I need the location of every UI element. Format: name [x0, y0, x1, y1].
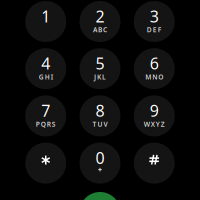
button[interactable]: 9: [134, 95, 175, 136]
staticText: W X Y Z: [144, 120, 165, 129]
staticText: 7: [41, 100, 50, 121]
staticText: T U V: [92, 120, 107, 129]
staticText: M N O: [145, 72, 163, 81]
button[interactable]: #: [134, 143, 175, 184]
staticText: 4: [41, 53, 50, 74]
staticText: D E F: [147, 25, 162, 34]
staticText: 9: [150, 100, 159, 121]
button[interactable]: 6: [134, 48, 175, 89]
button[interactable]: 4: [25, 48, 66, 89]
staticText: J K L: [94, 72, 106, 81]
button[interactable]: 0: [79, 143, 120, 184]
staticText: 5: [95, 53, 104, 74]
button[interactable]: 2: [79, 1, 120, 42]
staticText: G H I: [39, 72, 53, 81]
staticText: A B C: [93, 25, 107, 34]
staticText: 0: [95, 147, 104, 168]
button[interactable]: 8: [79, 95, 120, 136]
staticText: 3: [150, 6, 159, 27]
staticText: 1: [41, 6, 50, 27]
staticText: P Q R S: [36, 120, 56, 129]
staticText: 2: [95, 6, 104, 27]
button[interactable]: 7: [25, 95, 66, 136]
button[interactable]: 1: [25, 1, 66, 42]
button[interactable]: Call: [79, 192, 120, 200]
button[interactable]: *: [25, 143, 66, 184]
button[interactable]: 3: [134, 1, 175, 42]
staticText: 6: [150, 53, 159, 74]
staticText: 8: [95, 100, 104, 121]
button[interactable]: 5: [79, 48, 120, 89]
